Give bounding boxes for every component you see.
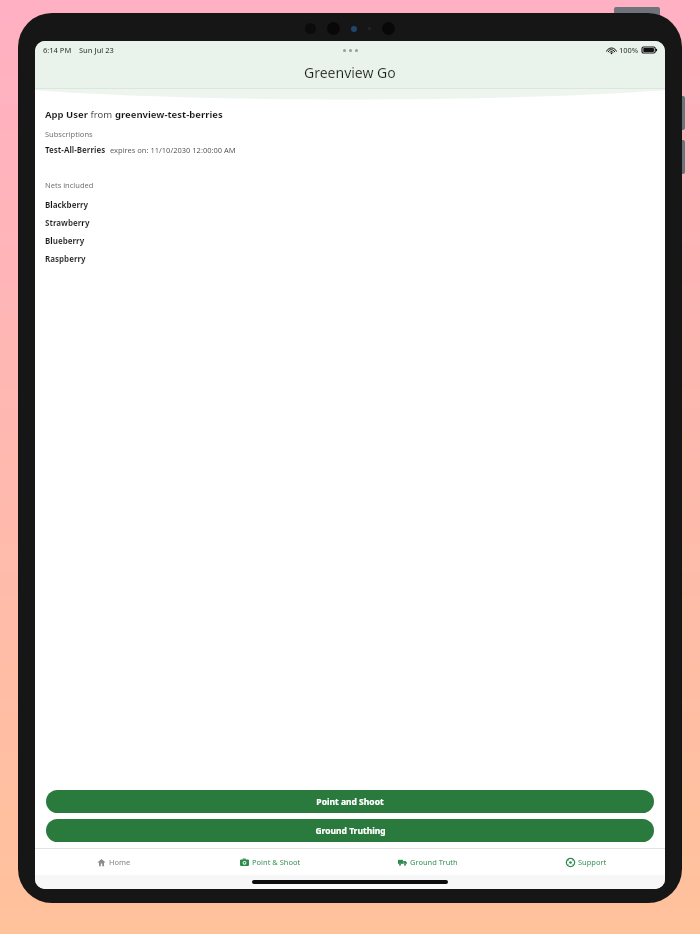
staticText: greenview-test-berries bbox=[115, 108, 223, 121]
staticText: Point and Shoot bbox=[316, 796, 384, 808]
button[interactable]: Blueberry bbox=[45, 231, 655, 249]
staticText: 6:14 PM bbox=[43, 45, 72, 55]
staticText: Point & Shoot bbox=[252, 857, 301, 867]
staticText: Ground Truth bbox=[410, 857, 458, 867]
button[interactable]: Support bbox=[507, 849, 665, 875]
staticText: Ground Truthing bbox=[315, 825, 386, 837]
staticText: Greenview Go bbox=[304, 63, 396, 82]
staticText: 100% bbox=[619, 45, 639, 55]
staticText: from bbox=[88, 108, 115, 121]
staticText: Support bbox=[578, 857, 607, 867]
button[interactable]: Point & Shoot bbox=[192, 849, 349, 875]
staticText: Subscriptions bbox=[45, 129, 93, 139]
staticText: Sun Jul 23 bbox=[79, 45, 114, 55]
button[interactable]: Ground Truthing bbox=[46, 819, 654, 842]
button[interactable]: Point and Shoot bbox=[46, 790, 654, 813]
staticText: Home bbox=[109, 857, 131, 867]
staticText: Test-All-Berries bbox=[45, 144, 106, 155]
staticText: App User bbox=[45, 108, 88, 121]
button[interactable]: Home bbox=[35, 849, 192, 875]
staticText: Strawberry bbox=[45, 217, 90, 228]
button[interactable]: Raspberry bbox=[45, 249, 655, 267]
staticText: Nets included bbox=[45, 180, 94, 190]
staticText: Blackberry bbox=[45, 199, 89, 210]
staticText: Blueberry bbox=[45, 235, 85, 246]
button[interactable]: Blackberry bbox=[45, 195, 655, 213]
staticText: expires on: 11/10/2030 12:00:00 AM bbox=[110, 145, 236, 155]
button[interactable]: Strawberry bbox=[45, 213, 655, 231]
staticText: Raspberry bbox=[45, 253, 86, 264]
button[interactable]: Ground Truth bbox=[349, 849, 507, 875]
